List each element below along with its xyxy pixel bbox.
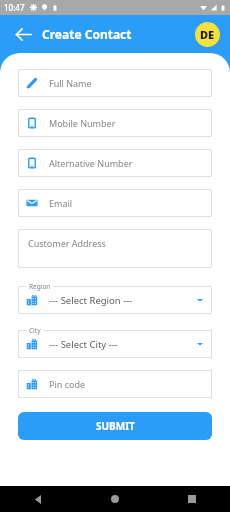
- staticText: 10:47: [4, 2, 25, 13]
- staticText: Create Contact: [42, 26, 132, 42]
- button[interactable]: Pin code: [18, 370, 212, 398]
- staticText: Pin code: [49, 378, 86, 390]
- staticText: Full Name: [49, 77, 92, 89]
- staticText: Mobile Number: [49, 117, 116, 129]
- button[interactable]: Email: [18, 189, 212, 217]
- button[interactable]: Full Name: [18, 69, 212, 97]
- staticText: --- Select City ---: [49, 338, 118, 351]
- button[interactable]: Recents: [153, 486, 230, 512]
- staticText: Email: [49, 197, 73, 209]
- button[interactable]: Mobile Number: [18, 109, 212, 137]
- button[interactable]: Home: [76, 486, 153, 512]
- staticText: Region: [29, 282, 51, 291]
- staticText: DE: [200, 27, 215, 42]
- button[interactable]: Alternative Number: [18, 149, 212, 177]
- staticText: --- Select Region ---: [49, 294, 133, 307]
- staticText: Alternative Number: [49, 157, 133, 169]
- button[interactable]: --- Select Region ---: [18, 286, 212, 314]
- button[interactable]: --- Select City ---: [18, 330, 212, 358]
- button[interactable]: Profile: [195, 22, 220, 47]
- staticText: Customer Address: [28, 237, 106, 249]
- staticText: City: [29, 326, 41, 335]
- button[interactable]: Back: [10, 21, 36, 47]
- button[interactable]: Customer Address: [18, 229, 212, 268]
- staticText: SUBMIT: [96, 419, 135, 433]
- button[interactable]: Back: [0, 486, 76, 512]
- button[interactable]: SUBMIT: [18, 412, 212, 440]
